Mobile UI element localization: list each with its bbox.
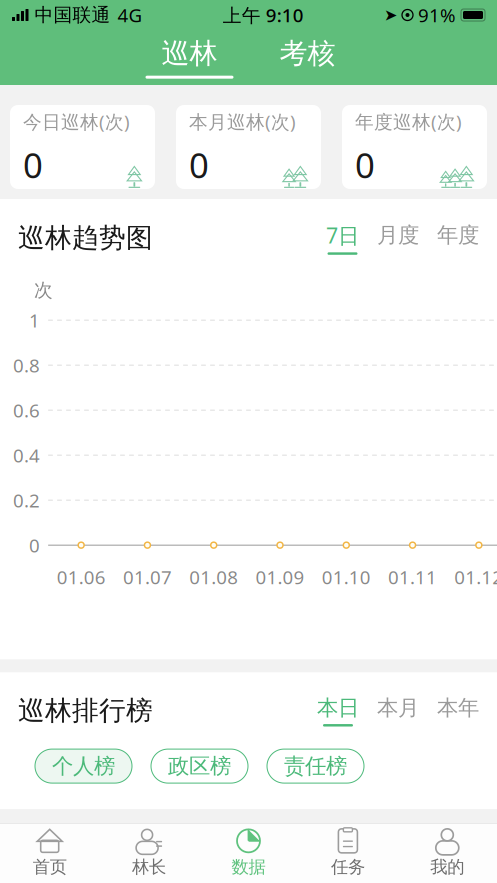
staticText: 巡林排行榜 bbox=[18, 694, 153, 727]
button[interactable]: 本年 bbox=[437, 695, 479, 727]
button[interactable]: 责任榜 bbox=[267, 749, 364, 783]
staticText: 政区榜 bbox=[168, 753, 231, 779]
staticText: 0 bbox=[23, 142, 43, 188]
button[interactable]: 巡林 bbox=[130, 36, 248, 79]
button[interactable]: 今日巡林(次) bbox=[10, 105, 155, 189]
staticText: 01.08 bbox=[189, 564, 238, 589]
staticText: 本月巡林(次) bbox=[189, 109, 296, 134]
staticText: 01.07 bbox=[123, 564, 172, 589]
button[interactable]: 考核 bbox=[248, 36, 366, 79]
staticText: 91% bbox=[418, 3, 456, 27]
staticText: 0 bbox=[355, 142, 375, 188]
button[interactable]: 我的 bbox=[398, 826, 497, 880]
staticText: 本年 bbox=[437, 695, 479, 721]
staticText: ➤ bbox=[384, 6, 397, 24]
button[interactable]: 本月巡林(次) bbox=[176, 105, 321, 189]
button[interactable]: 任务 bbox=[298, 826, 398, 880]
staticText: 任务 bbox=[331, 856, 365, 878]
staticText: 上午 9:10 bbox=[223, 3, 304, 27]
staticText: 01.09 bbox=[255, 564, 304, 589]
staticText: 次 bbox=[34, 279, 53, 302]
staticText: 01.06 bbox=[57, 564, 106, 589]
button[interactable]: 首页 bbox=[0, 826, 99, 880]
staticText: 0.2 bbox=[13, 488, 40, 513]
button[interactable]: 年度巡林(次) bbox=[342, 105, 487, 189]
staticText: 首页 bbox=[33, 856, 67, 878]
staticText: 林长 bbox=[132, 856, 166, 878]
staticText: 1 bbox=[29, 308, 40, 333]
staticText: 7日 bbox=[326, 221, 359, 249]
button[interactable]: 年度 bbox=[437, 222, 479, 254]
staticText: 月度 bbox=[377, 222, 419, 248]
staticText: 年度 bbox=[437, 222, 479, 248]
staticText: 本月 bbox=[377, 695, 419, 721]
button[interactable]: 本日 bbox=[317, 695, 359, 727]
staticText: 中国联通 bbox=[34, 3, 110, 26]
button[interactable]: 数据 bbox=[199, 826, 298, 880]
staticText: 0.4 bbox=[13, 443, 40, 468]
button[interactable]: 林长 bbox=[99, 826, 199, 880]
staticText: 01.12 bbox=[454, 564, 497, 589]
button[interactable]: 政区榜 bbox=[151, 749, 248, 783]
staticText: 今日巡林(次) bbox=[23, 109, 130, 134]
button[interactable]: 7日 bbox=[326, 221, 359, 255]
staticText: 个人榜 bbox=[52, 753, 115, 779]
staticText: 责任榜 bbox=[284, 753, 347, 779]
button[interactable]: 月度 bbox=[377, 222, 419, 254]
staticText: 0.6 bbox=[13, 398, 40, 423]
staticText: 0 bbox=[189, 142, 209, 188]
staticText: 考核 bbox=[279, 36, 335, 71]
staticText: 01.11 bbox=[388, 564, 437, 589]
staticText: 本日 bbox=[317, 695, 359, 721]
staticText: 0 bbox=[29, 533, 40, 558]
staticText: 巡林趋势图 bbox=[18, 221, 153, 254]
staticText: 数据 bbox=[231, 856, 265, 878]
staticText: 年度巡林(次) bbox=[355, 109, 462, 134]
button[interactable]: 本月 bbox=[377, 695, 419, 727]
staticText: 我的 bbox=[430, 856, 464, 878]
button[interactable]: 个人榜 bbox=[35, 749, 132, 783]
staticText: 01.10 bbox=[322, 564, 371, 589]
staticText: 巡林 bbox=[161, 36, 217, 71]
staticText: 0.8 bbox=[13, 353, 40, 378]
staticText: 4G bbox=[117, 3, 142, 27]
